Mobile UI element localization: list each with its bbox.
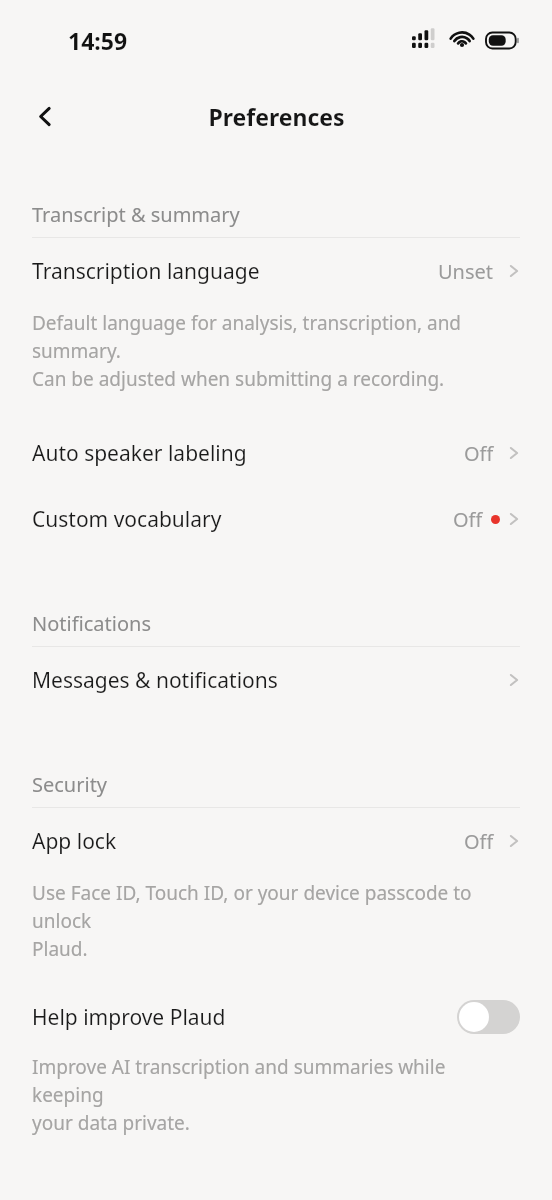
button[interactable]: Messages & notifications — [0, 647, 552, 713]
staticText: Unset — [438, 258, 494, 285]
button[interactable]: Custom vocabulary — [0, 486, 552, 552]
staticText: App lock — [32, 827, 117, 856]
button[interactable]: App lock — [0, 808, 552, 874]
staticText: Use Face ID, Touch ID, or your device pa… — [32, 880, 520, 962]
button[interactable]: Auto speaker labeling — [0, 420, 552, 486]
staticText: Help improve Plaud — [32, 1003, 226, 1032]
staticText: Transcription language — [32, 257, 260, 286]
staticText: 14:59 — [68, 25, 128, 56]
staticText: Transcript & summary — [32, 201, 240, 228]
staticText: Improve AI transcription and summaries w… — [32, 1054, 520, 1136]
staticText: Notifications — [32, 610, 151, 637]
button[interactable]: Back — [22, 93, 68, 139]
staticText: Off — [464, 828, 494, 855]
staticText: Off — [464, 440, 494, 467]
staticText: Preferences — [208, 101, 345, 132]
button[interactable]: Help improve Plaud — [0, 984, 552, 1050]
staticText: Default language for analysis, transcrip… — [32, 310, 520, 392]
button[interactable]: Transcription language — [0, 238, 552, 304]
staticText: Security — [32, 771, 108, 798]
staticText: Off — [453, 506, 483, 533]
staticText: Messages & notifications — [32, 666, 278, 695]
staticText: Auto speaker labeling — [32, 439, 247, 468]
staticText: Custom vocabulary — [32, 505, 222, 534]
